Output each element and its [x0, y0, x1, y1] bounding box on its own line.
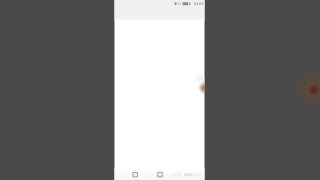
button[interactable]: Page content [115, 18, 205, 168]
button[interactable]: Stop recording [154, 168, 166, 180]
button[interactable]: Recording controls [172, 168, 205, 180]
button[interactable]: Screenshot [129, 168, 141, 180]
button[interactable]: Status bar [115, 0, 205, 18]
